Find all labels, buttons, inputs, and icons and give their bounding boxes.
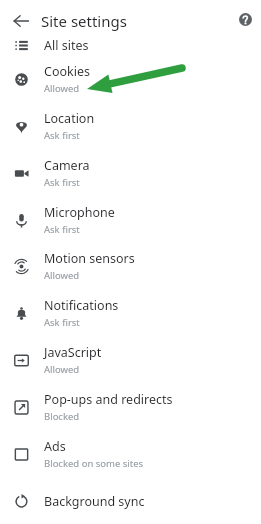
button[interactable]: Ads: [0, 436, 261, 472]
button[interactable]: Help: [233, 7, 257, 31]
staticText: Motion sensors: [44, 250, 135, 267]
staticText: Allowed: [44, 363, 80, 376]
button[interactable]: Microphone: [0, 202, 261, 238]
button[interactable]: Cookies: [0, 61, 261, 97]
staticText: Ads: [44, 438, 66, 455]
staticText: Allowed: [44, 82, 80, 95]
staticText: JavaScript: [44, 344, 102, 361]
button[interactable]: Back: [6, 6, 36, 36]
staticText: Location: [44, 110, 95, 127]
staticText: Blocked: [44, 410, 80, 423]
staticText: Ask first: [44, 223, 80, 236]
staticText: Ask first: [44, 316, 80, 329]
staticText: Ask first: [44, 176, 80, 189]
staticText: Blocked on some sites: [44, 457, 144, 470]
staticText: All sites: [44, 37, 89, 54]
staticText: Camera: [44, 157, 90, 174]
staticText: Allowed: [44, 269, 80, 282]
staticText: Microphone: [44, 204, 115, 221]
button[interactable]: Camera: [0, 155, 261, 191]
staticText: Cookies: [44, 63, 90, 80]
button[interactable]: Location: [0, 108, 261, 144]
staticText: Notifications: [44, 297, 119, 314]
button[interactable]: Background sync: [0, 488, 261, 514]
button[interactable]: All sites: [0, 32, 261, 58]
staticText: Ask first: [44, 129, 80, 142]
staticText: Background sync: [44, 493, 145, 510]
button[interactable]: Notifications: [0, 295, 261, 331]
staticText: Pop-ups and redirects: [44, 391, 173, 408]
button[interactable]: JavaScript: [0, 342, 261, 378]
button[interactable]: Motion sensors: [0, 248, 261, 284]
staticText: Site settings: [41, 11, 127, 31]
button[interactable]: Pop-ups and redirects: [0, 389, 261, 425]
